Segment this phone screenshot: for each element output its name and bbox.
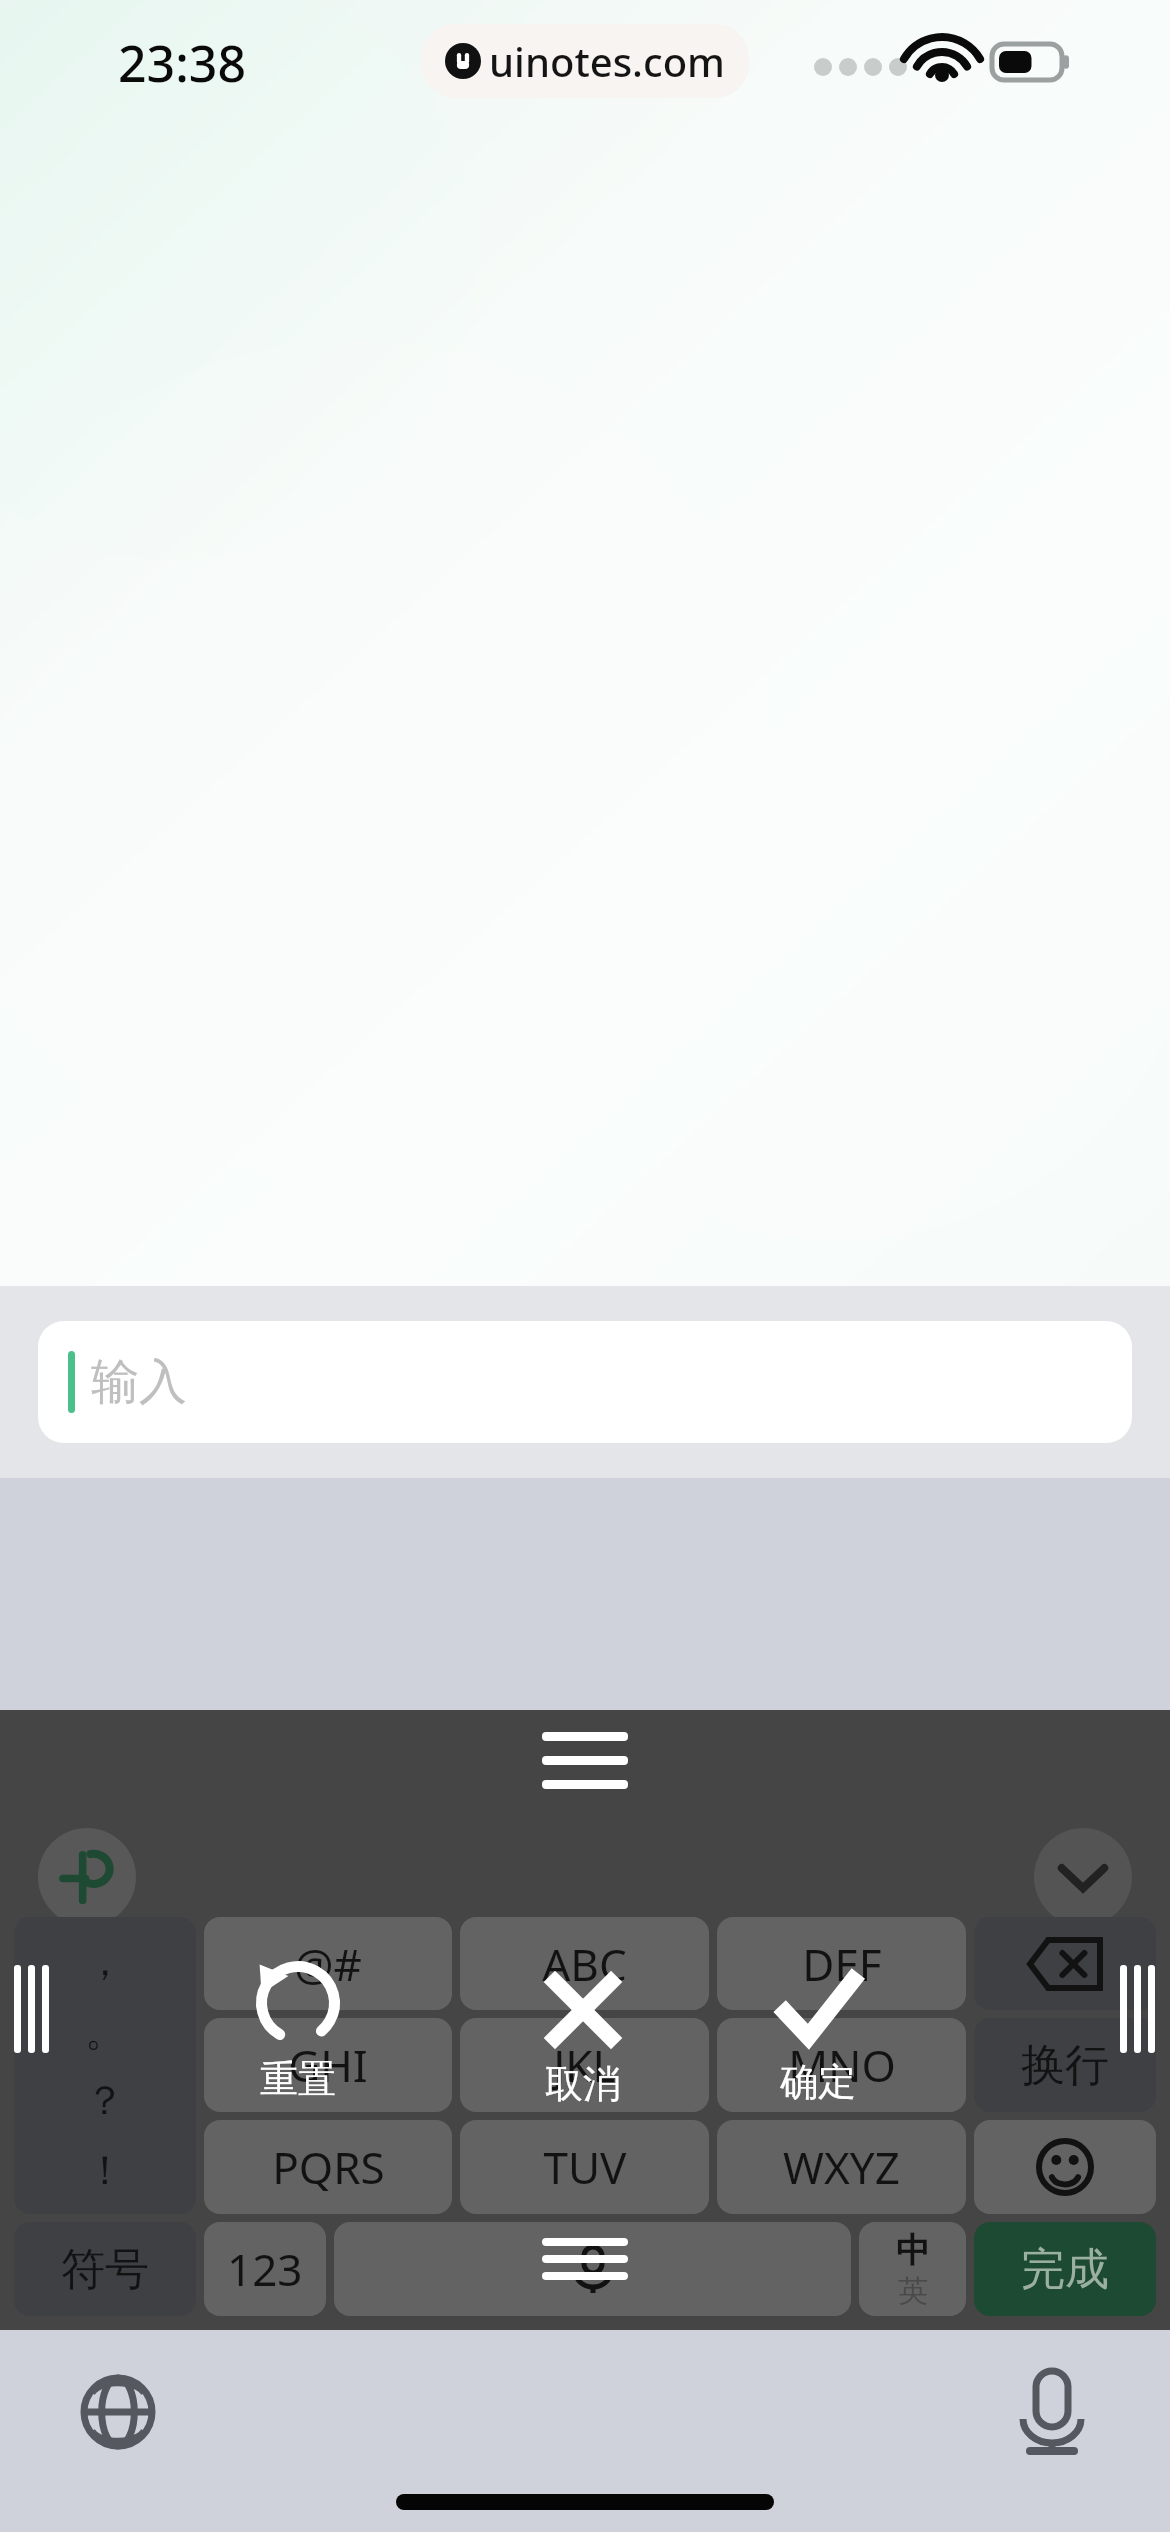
staticText: 英 bbox=[898, 2272, 928, 2310]
button[interactable]: 完成 bbox=[974, 2222, 1156, 2316]
button[interactable]: Emoji bbox=[974, 2120, 1156, 2214]
button[interactable]: 123 bbox=[204, 2222, 326, 2316]
other: Emoji bbox=[1036, 2138, 1094, 2196]
staticText: uinotes.com bbox=[489, 34, 725, 88]
button[interactable]: PQRS bbox=[204, 2120, 452, 2214]
other: Cancel bbox=[543, 1970, 623, 2050]
staticText: DEF bbox=[802, 1934, 882, 1994]
other: Confirm bbox=[770, 1960, 866, 2056]
button[interactable]: 符号 bbox=[14, 2222, 196, 2316]
staticText: 重置 bbox=[260, 2055, 336, 2103]
staticText: 取消 bbox=[545, 2060, 621, 2108]
staticText: 符号 bbox=[61, 2242, 149, 2297]
button[interactable]: 输入 bbox=[38, 1321, 1132, 1443]
button[interactable]: 换行 bbox=[974, 2018, 1156, 2112]
staticText: 换行 bbox=[1021, 2038, 1109, 2093]
button[interactable]: ， bbox=[14, 1917, 196, 2214]
other: Voice input bbox=[567, 2243, 619, 2295]
button[interactable]: GHI bbox=[204, 2018, 452, 2112]
staticText: ， bbox=[85, 1936, 125, 1986]
other: Delete bbox=[1030, 1938, 1100, 1990]
button[interactable]: Input method logo bbox=[38, 1828, 136, 1926]
button[interactable]: Change language bbox=[70, 2364, 166, 2460]
staticText: 23:38 bbox=[118, 29, 246, 97]
staticText: ！ bbox=[85, 2145, 125, 2195]
staticText: TUV bbox=[543, 2137, 627, 2197]
staticText: MNO bbox=[788, 2035, 896, 2095]
button[interactable]: Voice input bbox=[334, 2222, 851, 2316]
staticText: 中 bbox=[896, 2229, 930, 2272]
staticText: 完成 bbox=[1021, 2242, 1109, 2297]
staticText: ？ bbox=[85, 2075, 125, 2125]
button[interactable]: 中 bbox=[859, 2222, 966, 2316]
staticText: 123 bbox=[227, 2239, 303, 2299]
staticText: @# bbox=[294, 1934, 362, 1994]
button[interactable]: TUV bbox=[460, 2120, 709, 2214]
staticText: GHI bbox=[288, 2035, 368, 2095]
staticText: ABC bbox=[542, 1934, 627, 1994]
staticText: 输入 bbox=[91, 1352, 187, 1412]
staticText: WXYZ bbox=[783, 2137, 900, 2197]
other: Reset bbox=[250, 1955, 346, 2051]
staticText: JKL bbox=[553, 2035, 616, 2095]
button[interactable]: Dictation bbox=[1004, 2364, 1100, 2460]
button[interactable]: Hide keyboard bbox=[1034, 1828, 1132, 1926]
button[interactable]: MNO bbox=[717, 2018, 966, 2112]
button[interactable]: Delete bbox=[974, 1917, 1156, 2010]
staticText: 。 bbox=[85, 2006, 125, 2056]
staticText: PQRS bbox=[272, 2137, 385, 2197]
button[interactable]: DEF bbox=[717, 1917, 966, 2010]
button[interactable]: ABC bbox=[460, 1917, 709, 2010]
button[interactable]: @# bbox=[204, 1917, 452, 2010]
staticText: 确定 bbox=[780, 2058, 856, 2106]
button[interactable]: JKL bbox=[460, 2018, 709, 2112]
button[interactable]: WXYZ bbox=[717, 2120, 966, 2214]
